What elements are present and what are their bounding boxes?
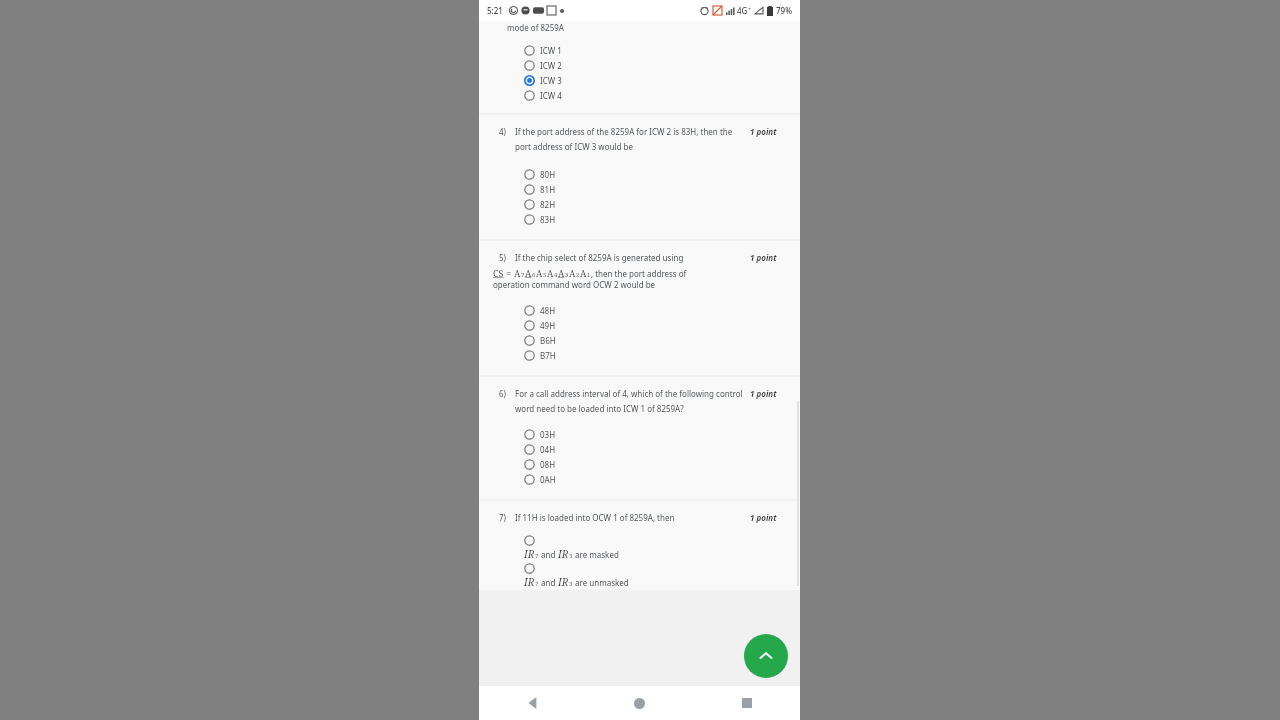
staticText: and — [539, 549, 558, 560]
staticText: 4 — [554, 271, 558, 279]
staticText: 1 point — [750, 512, 777, 523]
staticText: 3 — [569, 580, 573, 588]
button[interactable]: Recent apps — [693, 686, 800, 720]
staticText: IR — [524, 575, 535, 589]
staticText: + — [748, 6, 751, 13]
staticText: ICW 3 — [540, 75, 562, 86]
staticText: 1 point — [750, 252, 777, 263]
staticText: 4G — [737, 5, 748, 16]
staticText: 80H — [540, 169, 556, 180]
staticText: are unmasked — [573, 577, 629, 588]
staticText: ICW 4 — [540, 90, 562, 101]
button[interactable]: 08H — [479, 457, 800, 472]
staticText: 1 point — [750, 126, 777, 137]
staticText: 6) — [499, 388, 506, 399]
staticText: 03H — [540, 429, 556, 440]
staticText: A — [525, 267, 532, 279]
staticText: = — [504, 267, 514, 279]
staticText: 2 — [576, 271, 580, 279]
staticText: 4) — [499, 126, 506, 137]
staticText: A — [514, 267, 521, 279]
button[interactable]: 0AH — [479, 472, 800, 487]
staticText: ICW 1 — [540, 45, 562, 56]
staticText: 83H — [540, 214, 556, 225]
staticText: 7 — [535, 580, 539, 588]
button[interactable]: B7H — [479, 348, 800, 363]
staticText: 48H — [540, 305, 556, 316]
button[interactable]: 83H — [479, 212, 800, 227]
staticText: mode of 8259A — [507, 22, 564, 33]
staticText: 5 — [543, 271, 547, 279]
button[interactable]: ICW 1 — [479, 43, 800, 58]
staticText: 6 — [532, 271, 536, 279]
button[interactable]: B6H — [479, 333, 800, 348]
staticText: 3 — [569, 552, 573, 560]
staticText: ICW 2 — [540, 60, 562, 71]
staticText: 79% — [776, 5, 792, 16]
staticText: B7H — [540, 350, 556, 361]
staticText: 08H — [540, 459, 556, 470]
staticText: , then the port address of — [591, 268, 687, 279]
staticText: IR — [524, 547, 535, 561]
staticText: For a call address interval of 4, which … — [515, 388, 750, 414]
button[interactable]: ICW 3 — [479, 73, 800, 88]
button[interactable]: ICW 2 — [479, 58, 800, 73]
staticText: and — [539, 577, 558, 588]
button[interactable]: Scroll to top — [744, 634, 788, 678]
staticText: 49H — [540, 320, 556, 331]
staticText: CS — [493, 267, 504, 279]
staticText: IR — [558, 547, 569, 561]
staticText: 5) — [499, 252, 506, 263]
staticText: A — [558, 267, 565, 279]
staticText: 1 point — [750, 388, 777, 399]
button[interactable]: IR — [479, 534, 800, 562]
staticText: A — [569, 267, 576, 279]
staticText: 1 — [587, 271, 591, 279]
button[interactable]: 81H — [479, 182, 800, 197]
staticText: IR — [558, 575, 569, 589]
staticText: If the chip select of 8259A is generated… — [515, 252, 684, 263]
button[interactable]: ICW 4 — [479, 88, 800, 103]
staticText: 5:21 — [487, 5, 503, 16]
staticText: 7) — [499, 512, 506, 523]
staticText: A — [547, 267, 554, 279]
staticText: If the port address of the 8259A for ICW… — [515, 126, 750, 152]
button[interactable]: 48H — [479, 303, 800, 318]
staticText: A — [536, 267, 543, 279]
staticText: 7 — [535, 552, 539, 560]
staticText: If 11H is loaded into OCW 1 of 8259A, th… — [515, 512, 675, 523]
staticText: B6H — [540, 335, 556, 346]
staticText: 04H — [540, 444, 556, 455]
staticText: 82H — [540, 199, 556, 210]
staticText: 81H — [540, 184, 556, 195]
button[interactable]: 04H — [479, 442, 800, 457]
button[interactable]: 03H — [479, 427, 800, 442]
button[interactable]: Back — [479, 686, 586, 720]
staticText: 0AH — [540, 474, 556, 485]
staticText: are masked — [573, 549, 619, 560]
staticText: A — [580, 267, 587, 279]
button[interactable]: 49H — [479, 318, 800, 333]
staticText: operation command word OCW 2 would be — [493, 279, 656, 290]
staticText: 7 — [521, 271, 525, 279]
button[interactable]: 80H — [479, 167, 800, 182]
staticText: 3 — [565, 271, 569, 279]
button[interactable]: 82H — [479, 197, 800, 212]
button[interactable]: Home — [586, 686, 693, 720]
button[interactable]: IR — [479, 562, 800, 590]
